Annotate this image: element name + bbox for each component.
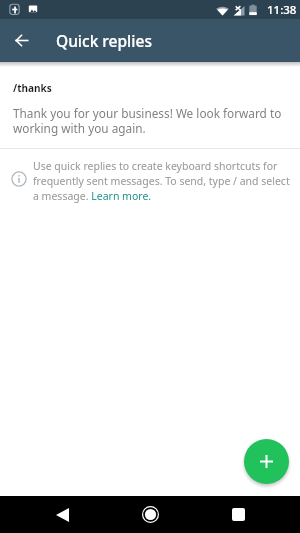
button[interactable]: Back (39, 496, 85, 533)
staticText: /thanks (13, 81, 52, 95)
button[interactable]: Home (127, 496, 173, 533)
staticText: Quick replies (56, 30, 152, 51)
staticText: Thank you for your business! We look for… (13, 105, 287, 136)
button[interactable]: Back (0, 19, 43, 62)
staticText: 11:38 (267, 2, 297, 18)
button[interactable]: /thanks (0, 62, 300, 148)
button[interactable]: Recent apps (215, 496, 261, 533)
button[interactable]: Add quick reply (244, 439, 289, 484)
staticText: Use quick replies to create keyboard sho… (33, 159, 292, 203)
